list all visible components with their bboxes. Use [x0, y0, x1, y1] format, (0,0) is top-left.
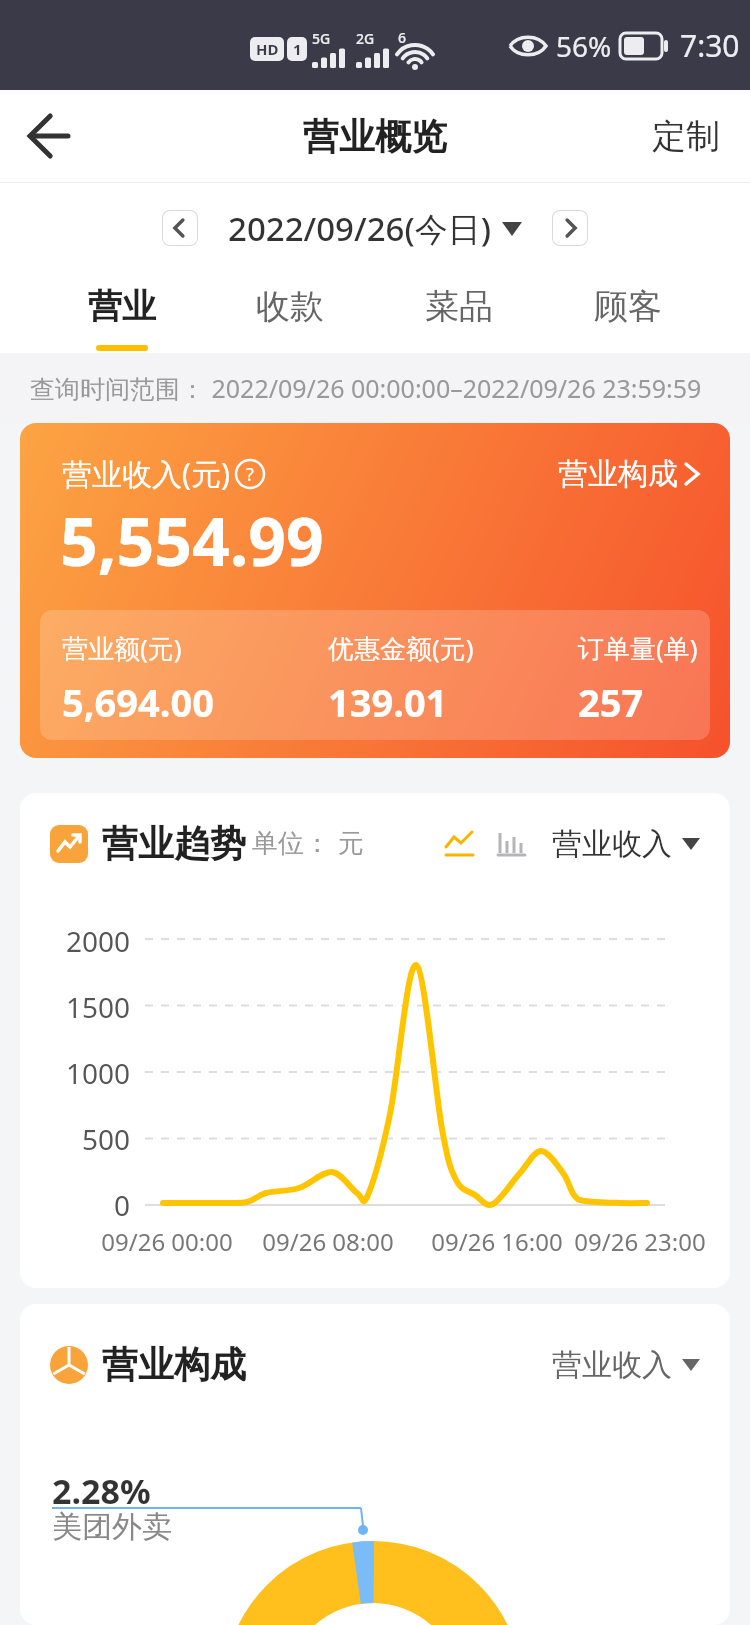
staticText: 2000 — [40, 922, 130, 960]
button[interactable] — [444, 829, 476, 859]
staticText: 营业趋势 — [102, 821, 246, 866]
staticText: 美团外卖 — [52, 1508, 172, 1546]
staticText: ? — [246, 462, 254, 487]
staticText: 营业构成 — [102, 1342, 246, 1387]
staticText: 2.28% — [52, 1468, 151, 1514]
button[interactable]: 营业构成 — [558, 455, 700, 493]
button[interactable]: 菜品 — [374, 273, 543, 353]
button[interactable]: 2022/09/26(今日) — [228, 206, 522, 251]
staticText: 营业额(元) — [62, 630, 182, 666]
staticText: 09/26 00:00 — [92, 1225, 242, 1258]
staticText: 1 — [293, 39, 302, 59]
staticText: 营业收入 — [552, 1346, 672, 1384]
staticText: 139.01 — [328, 676, 448, 728]
button[interactable] — [26, 114, 70, 158]
staticText: 营业收入(元) — [62, 453, 230, 494]
staticText: 菜品 — [425, 285, 493, 328]
staticText: 500 — [40, 1120, 130, 1158]
button[interactable]: 顾客 — [543, 273, 712, 353]
staticText: 查询时间范围： 2022/09/26 00:00:00–2022/09/26 2… — [30, 371, 702, 405]
staticText: 营业 — [88, 285, 156, 328]
staticText: 定制 — [652, 115, 720, 158]
button[interactable] — [552, 210, 588, 246]
staticText: 1500 — [40, 988, 130, 1026]
button[interactable]: 定制 — [652, 115, 720, 158]
button[interactable] — [496, 829, 528, 859]
button[interactable]: 营业收入(元) — [20, 423, 730, 758]
staticText: HD — [256, 39, 279, 59]
staticText: 7:30 — [680, 25, 740, 66]
staticText: 元 — [338, 827, 364, 860]
staticText: 优惠金额(元) — [328, 630, 474, 666]
staticText: 1000 — [40, 1054, 130, 1092]
staticText: 09/26 08:00 — [253, 1225, 403, 1258]
staticText: 单位： — [252, 827, 330, 860]
staticText: 09/26 23:00 — [565, 1225, 715, 1258]
staticText: 5,554.99 — [60, 495, 324, 585]
staticText: 0 — [40, 1186, 130, 1224]
staticText: 顾客 — [594, 285, 662, 328]
button[interactable]: 营业收入 — [552, 825, 700, 863]
staticText: 订单量(单) — [578, 630, 698, 666]
button[interactable]: 收款 — [206, 273, 374, 353]
staticText: 6 — [398, 28, 407, 47]
staticText: 营业概览 — [303, 114, 447, 159]
staticText: 257 — [578, 676, 644, 728]
button[interactable]: 营业收入 — [552, 1346, 700, 1384]
button[interactable]: 营业 — [38, 273, 206, 353]
staticText: 56% — [556, 27, 612, 65]
staticText: 2022/09/26(今日) — [228, 206, 492, 251]
staticText: 5G — [312, 29, 331, 48]
staticText: 09/26 16:00 — [422, 1225, 572, 1258]
button[interactable] — [162, 210, 198, 246]
staticText: 营业收入 — [552, 825, 672, 863]
staticText: 5,694.00 — [62, 676, 214, 728]
staticText: 收款 — [256, 285, 324, 328]
staticText: 2G — [356, 29, 375, 48]
staticText: 营业构成 — [558, 455, 678, 493]
